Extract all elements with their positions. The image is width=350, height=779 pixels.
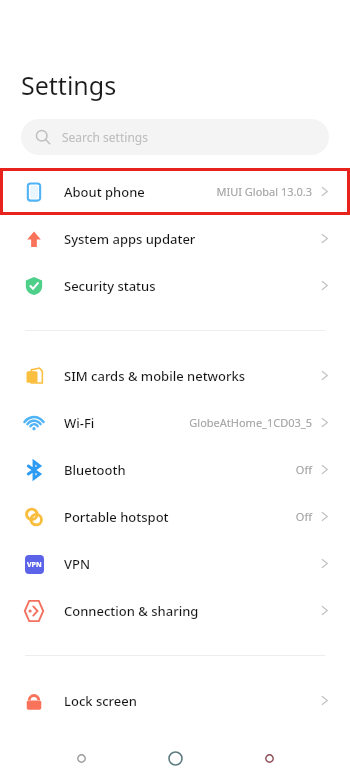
staticText: Off	[295, 462, 312, 477]
button[interactable]: Back	[70, 747, 92, 769]
staticText: MIUI Global 13.0.3	[216, 184, 312, 199]
button[interactable]: Lock screen	[0, 677, 350, 724]
button[interactable]: Bluetooth	[0, 446, 350, 493]
staticText: Portable hotspot	[64, 508, 169, 526]
button[interactable]: VPN	[0, 540, 350, 587]
button[interactable]: Search settings	[21, 119, 329, 155]
button[interactable]: Recents	[258, 747, 280, 769]
button[interactable]: Connection & sharing	[0, 587, 350, 634]
button[interactable]: SIM cards & mobile networks	[0, 352, 350, 399]
staticText: Settings	[21, 68, 117, 102]
staticText: Bluetooth	[64, 461, 126, 479]
staticText: SIM cards & mobile networks	[64, 367, 246, 385]
staticText: Security status	[64, 277, 156, 295]
staticText: VPN	[27, 560, 42, 570]
staticText: GlobeAtHome_1CD03_5	[189, 415, 312, 430]
button[interactable]: Portable hotspot	[0, 493, 350, 540]
staticText: VPN	[64, 555, 91, 573]
staticText: System apps updater	[64, 230, 196, 248]
button[interactable]: Wi-Fi	[0, 399, 350, 446]
staticText: Search settings	[62, 129, 148, 145]
button[interactable]: Security status	[0, 262, 350, 309]
button[interactable]: About phone	[0, 168, 350, 215]
staticText: Connection & sharing	[64, 602, 199, 620]
button[interactable]: System apps updater	[0, 215, 350, 262]
staticText: Wi-Fi	[64, 414, 95, 432]
staticText: About phone	[64, 183, 145, 201]
button[interactable]: Home	[162, 745, 188, 771]
staticText: Lock screen	[64, 692, 137, 710]
staticText: Off	[295, 509, 312, 524]
